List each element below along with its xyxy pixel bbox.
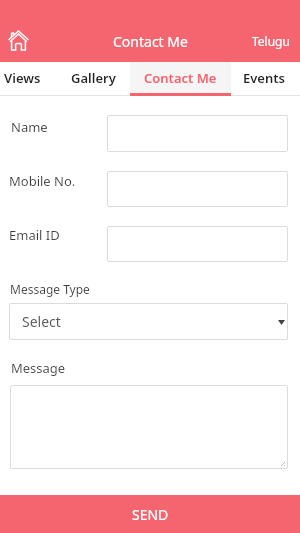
staticText: Gallery (71, 69, 116, 87)
button[interactable]: Gallery (61, 63, 125, 93)
staticText: Name (11, 118, 48, 136)
button[interactable] (107, 226, 288, 262)
button[interactable]: Views (0, 63, 54, 93)
button[interactable] (10, 385, 288, 469)
button[interactable]: SEND (0, 495, 300, 533)
staticText: Contact Me (144, 69, 217, 87)
staticText: Views (4, 69, 41, 87)
button[interactable] (130, 62, 231, 93)
button[interactable]: Telugu (191, 26, 300, 56)
staticText: Contact Me (113, 32, 188, 51)
staticText: Events (243, 69, 285, 87)
button[interactable]: Contact Me (130, 63, 230, 93)
button[interactable] (107, 115, 288, 152)
staticText: Select (22, 312, 61, 331)
button[interactable] (107, 171, 288, 207)
button[interactable] (6, 27, 32, 53)
staticText: Email ID (9, 226, 60, 244)
staticText: SEND (132, 505, 169, 524)
staticText: Telugu (252, 33, 290, 49)
button[interactable]: Events (232, 63, 296, 93)
staticText: Mobile No. (9, 172, 76, 190)
staticText: Message (11, 359, 66, 377)
staticText: Message Type (10, 281, 90, 297)
button[interactable]: Select (9, 303, 288, 340)
